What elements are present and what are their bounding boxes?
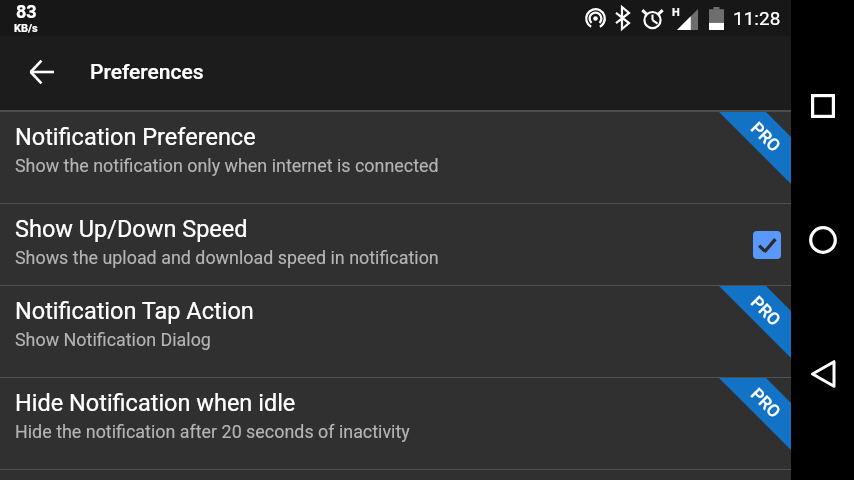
staticText: Hide Notification when idle bbox=[15, 389, 296, 417]
button[interactable]: Notification Tap Action bbox=[0, 286, 791, 377]
staticText: H bbox=[672, 6, 680, 19]
button[interactable]: Show Up/Down Speed bbox=[0, 204, 791, 285]
button[interactable]: Navigate up bbox=[18, 48, 66, 96]
staticText: Show the notification only when internet… bbox=[15, 155, 439, 176]
button[interactable]: Back bbox=[799, 350, 847, 398]
staticText: Notification Tap Action bbox=[15, 297, 254, 325]
staticText: 83 bbox=[16, 1, 37, 22]
staticText: PRO bbox=[747, 384, 785, 422]
button[interactable]: Notification Preference bbox=[0, 112, 791, 203]
staticText: Preferences bbox=[90, 60, 204, 85]
button[interactable]: Show Up/Down Speed toggle bbox=[747, 225, 787, 265]
staticText: 11:28 bbox=[733, 7, 781, 29]
button[interactable]: Hide Notification when idle bbox=[0, 378, 791, 469]
staticText: Notification Preference bbox=[15, 123, 256, 151]
staticText: PRO bbox=[747, 292, 785, 330]
staticText: Shows the upload and download speed in n… bbox=[15, 247, 439, 268]
staticText: PRO bbox=[747, 118, 785, 156]
staticText: Show Notification Dialog bbox=[15, 329, 211, 350]
staticText: Show Up/Down Speed bbox=[15, 215, 248, 243]
button[interactable]: Recent apps bbox=[799, 82, 847, 130]
staticText: KB/s bbox=[14, 22, 38, 35]
button[interactable]: Home bbox=[799, 216, 847, 264]
staticText: Hide the notification after 20 seconds o… bbox=[15, 421, 410, 442]
